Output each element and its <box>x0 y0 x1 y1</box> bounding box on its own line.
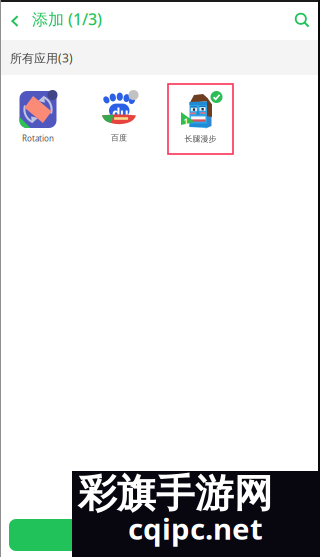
staticText: 长腿漫步 <box>184 134 216 144</box>
button[interactable]: 1 <box>168 84 233 154</box>
staticText: 下一步 <box>134 524 185 546</box>
staticText: 百度 <box>111 133 127 143</box>
button[interactable]: Back <box>2 6 28 36</box>
staticText: 1 <box>183 116 188 127</box>
staticText: du <box>112 104 129 122</box>
button[interactable]: Rotation <box>10 91 66 149</box>
staticText: Rotation <box>22 133 54 144</box>
button[interactable]: du <box>91 91 147 149</box>
staticText: 添加 (1/3) <box>32 8 102 30</box>
staticText: 彩旗手游网 <box>78 470 273 517</box>
button[interactable]: 添加 (1/3) <box>32 4 102 34</box>
staticText: cqipc.net <box>128 509 263 548</box>
staticText: 所有应用(3) <box>10 50 73 66</box>
button[interactable]: Search <box>290 5 314 35</box>
button[interactable]: 下一步 <box>9 519 311 551</box>
